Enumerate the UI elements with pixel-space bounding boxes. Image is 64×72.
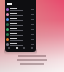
button[interactable] [5, 32, 36, 37]
button[interactable] [5, 42, 36, 47]
button[interactable] [5, 12, 36, 17]
button[interactable]: Chats [6, 45, 12, 51]
button[interactable] [5, 37, 36, 42]
button[interactable] [5, 17, 36, 22]
button[interactable] [5, 22, 36, 27]
button[interactable]: Status [21, 45, 27, 51]
button[interactable]: Settings [29, 45, 35, 51]
button[interactable] [5, 2, 36, 6]
button[interactable] [5, 27, 36, 32]
button[interactable] [5, 7, 36, 12]
button[interactable]: Calls [14, 45, 20, 51]
